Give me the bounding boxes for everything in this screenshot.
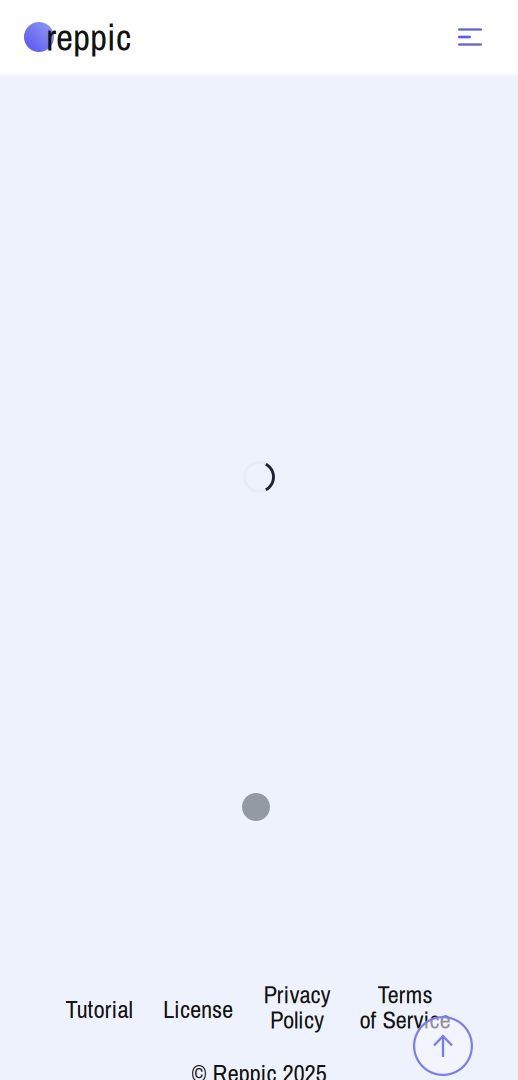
button[interactable]: reppic	[24, 12, 139, 62]
button[interactable]: Scroll to top	[413, 1016, 473, 1076]
staticText: © Reppic 2025	[191, 1056, 326, 1080]
button[interactable]: Menu	[448, 18, 492, 55]
staticText: reppic	[46, 12, 131, 62]
staticText: Tutorial	[65, 992, 132, 1026]
staticText: License	[163, 992, 233, 1026]
button[interactable]: License	[157, 992, 239, 1026]
button[interactable]: Terms	[353, 978, 456, 1036]
staticText: Terms	[377, 978, 432, 1011]
staticText: of Service	[359, 1003, 450, 1036]
button[interactable]: Tutorial	[59, 992, 138, 1026]
staticText: Policy	[270, 1003, 324, 1036]
staticText: Privacy	[263, 978, 330, 1011]
button[interactable]: Privacy	[257, 978, 336, 1036]
